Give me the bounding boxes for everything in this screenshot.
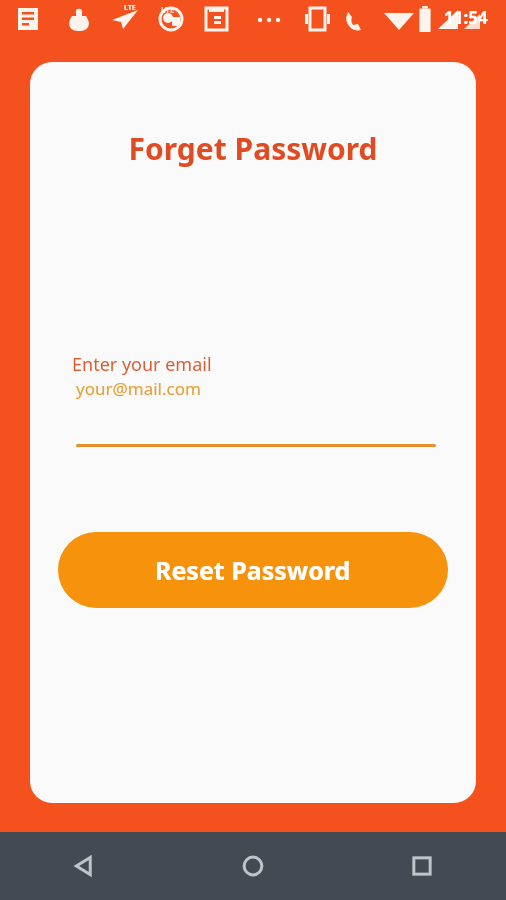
button[interactable]: Reset Password xyxy=(58,532,448,608)
staticText: LTE xyxy=(124,3,136,13)
staticText: Reset Password xyxy=(155,553,351,587)
staticText: your@mail.com xyxy=(76,377,201,400)
button[interactable]: Recent apps xyxy=(337,832,506,900)
button[interactable]: Home xyxy=(168,832,337,900)
staticText: Enter your email xyxy=(72,352,212,377)
button[interactable]: Back xyxy=(0,832,168,900)
staticText: LTE xyxy=(161,4,175,15)
button[interactable] xyxy=(76,444,436,447)
staticText: Forget Password xyxy=(30,128,476,169)
staticText: 11:54 xyxy=(444,6,488,29)
